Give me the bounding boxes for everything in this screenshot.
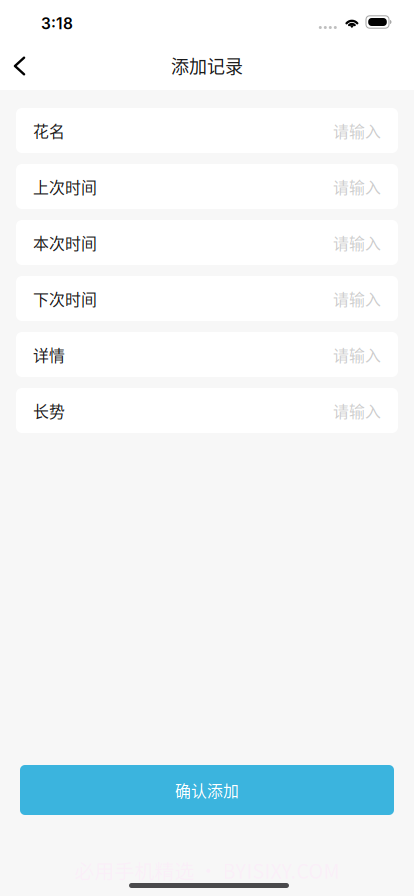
staticText: 详情: [33, 343, 65, 366]
staticText: 请输入: [333, 175, 381, 198]
staticText: 确认添加: [175, 778, 239, 801]
staticText: 添加记录: [171, 52, 243, 79]
button[interactable]: 详情: [16, 332, 398, 377]
staticText: 本次时间: [33, 231, 97, 254]
button[interactable]: 长势: [16, 388, 398, 433]
button[interactable]: 本次时间: [16, 220, 398, 265]
button[interactable]: 花名: [16, 108, 398, 153]
staticText: 上次时间: [33, 175, 97, 198]
staticText: 请输入: [333, 343, 381, 366]
staticText: 请输入: [333, 231, 381, 254]
staticText: 必用手机精选 · BYISIXY.COM: [74, 856, 339, 884]
button[interactable]: 确认添加: [20, 765, 394, 815]
staticText: 花名: [33, 119, 65, 142]
staticText: 长势: [33, 399, 65, 422]
staticText: 下次时间: [33, 287, 97, 310]
button[interactable]: 下次时间: [16, 276, 398, 321]
button[interactable]: 上次时间: [16, 164, 398, 209]
staticText: 请输入: [333, 119, 381, 142]
staticText: 请输入: [333, 399, 381, 422]
staticText: 请输入: [333, 287, 381, 310]
button[interactable]: Back: [0, 44, 39, 90]
staticText: 3:18: [41, 14, 73, 33]
